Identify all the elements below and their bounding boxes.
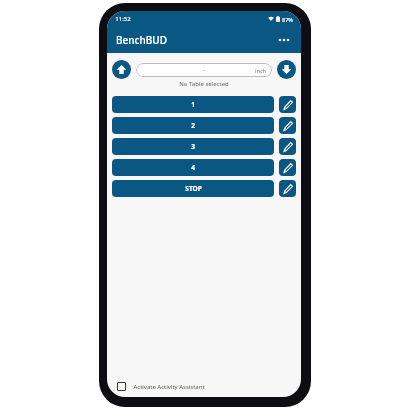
- button[interactable]: 2: [112, 117, 274, 134]
- staticText: 1: [191, 100, 195, 109]
- button[interactable]: Edit 3: [279, 138, 296, 155]
- button[interactable]: -: [136, 63, 272, 77]
- staticText: 11:52: [115, 15, 131, 23]
- button[interactable]: Activate Activity Assistant: [117, 382, 291, 391]
- button[interactable]: More options: [276, 27, 292, 53]
- staticText: Activate Activity Assistant: [133, 383, 205, 391]
- button[interactable]: Edit STOP: [279, 180, 296, 197]
- button[interactable]: Edit 4: [279, 159, 296, 176]
- staticText: 2: [191, 121, 195, 130]
- staticText: No Table selected: [179, 80, 229, 88]
- staticText: -: [203, 66, 205, 74]
- staticText: STOP: [185, 184, 202, 193]
- button[interactable]: 3: [112, 138, 274, 155]
- button[interactable]: 1: [112, 96, 274, 113]
- button[interactable]: Edit 1: [279, 96, 296, 113]
- staticText: BenchBUD: [116, 33, 167, 47]
- button[interactable]: Next table: [277, 60, 296, 79]
- staticText: 3: [191, 142, 195, 151]
- button[interactable]: STOP: [112, 180, 274, 197]
- button[interactable]: Previous table: [112, 60, 131, 79]
- staticText: inch: [255, 67, 266, 74]
- button[interactable]: 4: [112, 159, 274, 176]
- button[interactable]: Edit 2: [279, 117, 296, 134]
- staticText: 4: [191, 163, 195, 172]
- staticText: 87%: [282, 16, 293, 23]
